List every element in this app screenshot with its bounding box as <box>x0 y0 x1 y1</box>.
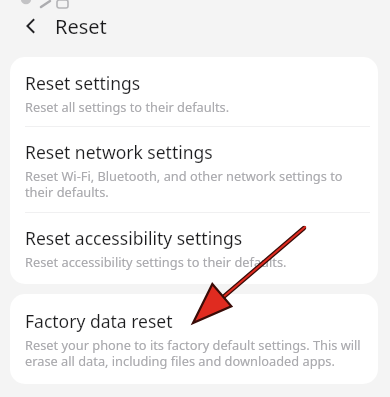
staticText: Reset settings <box>25 71 141 95</box>
staticText: Reset all settings to their defaults. <box>25 98 230 115</box>
staticText: Factory data reset <box>25 309 173 333</box>
button[interactable]: Back <box>16 11 46 41</box>
button[interactable]: Reset accessibility settings <box>10 213 378 284</box>
staticText: Reset Wi-Fi, Bluetooth, and other networ… <box>25 167 364 201</box>
staticText: Reset accessibility settings <box>25 226 243 250</box>
staticText: Reset your phone to its factory default … <box>25 336 364 370</box>
button[interactable]: Reset settings <box>10 57 378 126</box>
button[interactable]: Reset network settings <box>10 127 378 212</box>
staticText: Reset network settings <box>25 140 213 164</box>
button[interactable]: Factory data reset <box>10 294 378 384</box>
staticText: Reset <box>55 13 107 40</box>
staticText: Reset accessibility settings to their de… <box>25 253 287 270</box>
